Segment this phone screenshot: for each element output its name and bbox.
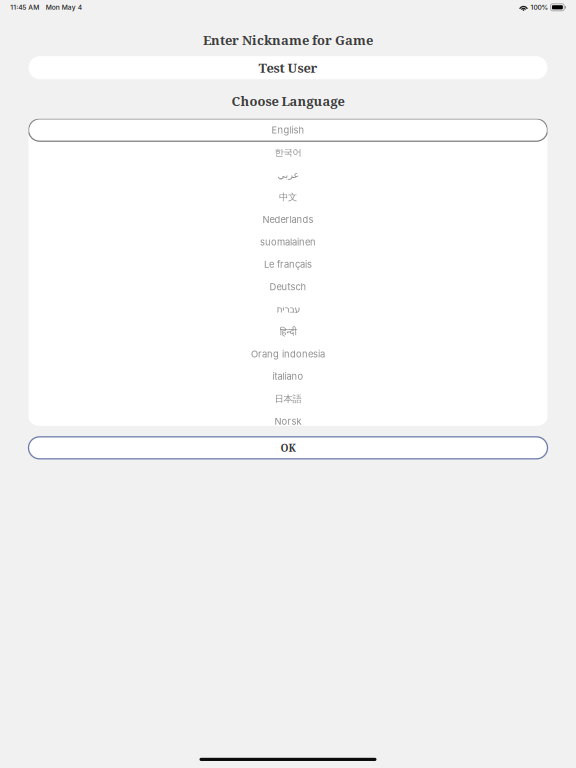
button[interactable]: Orang indonesia (28, 343, 547, 365)
button[interactable]: 日本語 (28, 388, 547, 410)
button[interactable]: Test User (28, 56, 547, 79)
button[interactable]: 中文 (28, 186, 547, 208)
staticText: Orang indonesia (251, 348, 325, 360)
staticText: Mon May 4 (46, 3, 82, 11)
staticText: हिन्दी (279, 325, 296, 338)
staticText: 11:45 AM (10, 3, 39, 11)
button[interactable]: عربي (28, 164, 547, 186)
staticText: عربي (277, 169, 299, 180)
button[interactable]: italiano (28, 365, 547, 388)
staticText: Norsk (274, 416, 301, 427)
staticText: Le français (264, 259, 312, 270)
staticText: Test User (258, 59, 317, 76)
staticText: 한국어 (274, 147, 301, 158)
staticText: OK (280, 441, 295, 455)
button[interactable]: 한국어 (28, 141, 547, 164)
staticText: English (271, 124, 304, 136)
staticText: Nederlands (262, 214, 313, 225)
button[interactable]: suomalainen (28, 231, 547, 253)
staticText: עברית (276, 304, 300, 315)
staticText: 中文 (279, 191, 297, 203)
staticText: suomalainen (260, 236, 316, 248)
staticText: Enter Nickname for Game (203, 31, 373, 49)
button[interactable]: Norsk (28, 410, 547, 432)
button[interactable]: עברית (28, 298, 547, 320)
button[interactable]: English (28, 119, 547, 141)
button[interactable]: Nederlands (28, 208, 547, 231)
button[interactable]: OK (28, 437, 547, 459)
button[interactable]: Le français (28, 253, 547, 276)
staticText: italiano (272, 371, 303, 382)
button[interactable]: Deutsch (28, 276, 547, 298)
staticText: 日本語 (274, 393, 301, 405)
staticText: Deutsch (269, 281, 306, 292)
staticText: Choose Language (231, 92, 344, 110)
staticText: 100% (530, 3, 548, 11)
button[interactable]: हिन्दी (28, 320, 547, 343)
